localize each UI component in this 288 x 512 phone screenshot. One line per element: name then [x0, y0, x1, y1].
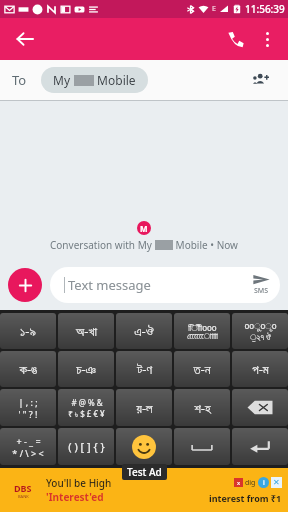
staticText: M	[140, 223, 148, 234]
button[interactable]: ক-ঙ	[0, 351, 56, 387]
button[interactable]: এ-ঔ	[116, 313, 172, 349]
staticText: প-ম	[252, 360, 269, 378]
staticText: ₹ ৳ $ £ € ¥	[68, 408, 105, 419]
staticText: i	[263, 478, 265, 488]
staticText: To	[12, 71, 27, 89]
button[interactable]: Add attachment	[8, 268, 42, 302]
staticText: * / \ > <	[12, 447, 44, 459]
button[interactable]: চ-ঞ	[58, 351, 114, 387]
staticText: 11:56:39	[245, 2, 285, 16]
button[interactable]	[232, 428, 288, 465]
staticText: Mobile	[94, 72, 136, 88]
staticText: Conversation with My	[50, 238, 155, 252]
button[interactable]: | , : ;	[0, 389, 56, 426]
button[interactable]: Call	[218, 22, 252, 56]
staticText: এ-ঔ	[134, 322, 154, 340]
staticText: অ-খা	[76, 322, 97, 340]
button[interactable]: + - _ =	[0, 428, 56, 465]
staticText: # @ % &	[71, 397, 103, 408]
staticText: | , : ;	[18, 396, 38, 408]
staticText: interest from ₹1	[209, 492, 282, 504]
button[interactable]	[232, 389, 288, 426]
button[interactable]: য়-ল	[116, 389, 172, 426]
button[interactable]: Ad info	[258, 477, 269, 488]
button[interactable]: Add recipient	[246, 65, 276, 95]
button[interactable]: ট-ণ	[116, 351, 172, 387]
button[interactable]: # @ % &	[58, 389, 114, 426]
staticText: শ-হ	[194, 399, 211, 417]
button[interactable]: প-ম	[232, 351, 288, 387]
staticText: ' " ? !	[18, 408, 38, 420]
staticText: ১-৯	[20, 322, 36, 340]
button[interactable]	[174, 428, 230, 465]
staticText: ািীিীooo	[188, 322, 217, 333]
staticText: + - _ =	[16, 435, 41, 447]
button[interactable]: অ-খা	[58, 313, 114, 349]
button[interactable]: Back	[8, 22, 42, 56]
staticText: য়-ল	[136, 399, 153, 417]
staticText: ত-ন	[193, 360, 211, 378]
staticText: E	[212, 4, 216, 14]
button[interactable]: Send SMS	[251, 274, 272, 296]
button[interactable]: ooୁoୃo	[232, 313, 288, 349]
button[interactable]: শ-হ	[174, 389, 230, 426]
staticText: ট-ণ	[137, 360, 152, 378]
staticText: ooୁoୃo	[244, 320, 277, 331]
staticText: চ-ঞ	[76, 360, 96, 378]
button[interactable]: Close ad	[271, 477, 282, 488]
staticText: Text message	[68, 276, 151, 294]
staticText: েোেোোোো	[187, 333, 218, 341]
staticText: My	[53, 72, 74, 88]
staticText: ক-ঙ	[19, 360, 38, 378]
button[interactable]: ত-ন	[174, 351, 230, 387]
staticText: ੁ২৭ ঔ	[250, 331, 271, 342]
staticText: 'Interest'ed	[46, 490, 104, 504]
button[interactable]: ািীিীooo	[174, 313, 230, 349]
staticText: ✕	[273, 478, 280, 487]
staticText: BANK	[18, 494, 29, 499]
staticText: ( ) [ ] { }	[68, 439, 105, 454]
button[interactable]	[116, 428, 172, 465]
button[interactable]: ১-৯	[0, 313, 56, 349]
button[interactable]: More options	[252, 24, 282, 54]
staticText: DBS	[14, 482, 32, 494]
staticText: Test Ad	[127, 465, 162, 479]
staticText: You'll be High	[46, 476, 112, 490]
button[interactable]: My	[41, 67, 148, 93]
button[interactable]: Text message	[50, 267, 280, 303]
staticText: Mobile • Now	[173, 238, 238, 252]
button[interactable]: ( ) [ ] { }	[58, 428, 114, 465]
staticText: x	[237, 479, 241, 487]
staticText: SMS	[254, 286, 269, 296]
staticText: dig	[245, 478, 256, 488]
